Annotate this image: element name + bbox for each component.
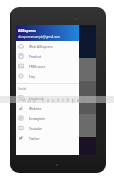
staticText: Facebook bbox=[29, 96, 44, 100]
staticText: Twitter bbox=[29, 136, 40, 140]
button[interactable]: Youtube bbox=[16, 123, 79, 133]
button[interactable]: Product bbox=[16, 51, 79, 61]
button[interactable]: Website bbox=[16, 103, 79, 113]
button[interactable]: Facebook bbox=[16, 93, 79, 103]
staticText: Electrify bbox=[18, 64, 33, 69]
staticText: US $ 22.00 bbox=[18, 126, 33, 130]
button[interactable]: Web AliExpress bbox=[16, 41, 79, 51]
staticText: Web AliExpress bbox=[29, 44, 53, 48]
staticText: FREEnsure bbox=[29, 64, 46, 68]
staticText: AliExpress bbox=[18, 28, 36, 33]
staticText: App Launchpad bbox=[23, 97, 87, 103]
staticText: Social bbox=[18, 87, 27, 91]
staticText: Faq bbox=[29, 74, 35, 78]
staticText: aliexpressexample@gmail.com bbox=[18, 35, 60, 39]
staticText: US $ 12.99 bbox=[18, 75, 33, 79]
button[interactable]: Faq bbox=[16, 71, 79, 81]
staticText: Instagram bbox=[29, 116, 46, 120]
button[interactable]: FREEnsure bbox=[16, 61, 79, 71]
staticText: Website bbox=[29, 106, 42, 110]
button[interactable]: Instagram bbox=[16, 113, 79, 123]
staticText: Youtube bbox=[29, 126, 42, 130]
staticText: Product bbox=[29, 54, 42, 58]
button[interactable]: Twitter bbox=[16, 133, 79, 143]
